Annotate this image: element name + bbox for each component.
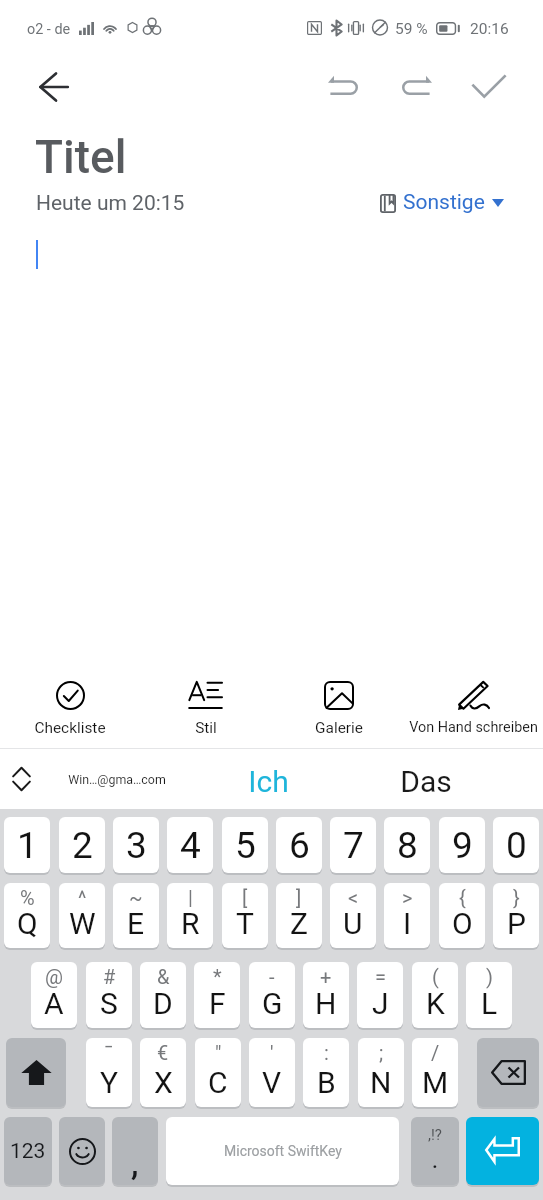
staticText: ; <box>379 1041 384 1064</box>
staticText: 123 <box>10 1139 46 1164</box>
button[interactable]: Fertig <box>462 66 515 108</box>
button[interactable]: 9 <box>439 817 485 873</box>
staticText: 7 <box>343 824 364 867</box>
button[interactable]: Zurück <box>24 72 69 102</box>
staticText: Stil <box>195 719 217 737</box>
staticText: @ <box>45 965 63 988</box>
staticText: L <box>481 986 498 1021</box>
staticText: 5 <box>235 824 256 867</box>
staticText: H <box>315 986 337 1021</box>
staticText: K <box>426 986 445 1021</box>
button[interactable]: ( <box>412 962 458 1028</box>
button[interactable]: ,!? <box>411 1117 459 1185</box>
staticText: J <box>372 986 389 1021</box>
button[interactable]: Vorschläge erweitern <box>2 749 40 809</box>
staticText: € <box>157 1041 169 1064</box>
button[interactable]: ¯ <box>86 1038 132 1107</box>
button[interactable]: : <box>303 1038 349 1107</box>
staticText: 20:16 <box>470 20 509 38</box>
staticText: A <box>44 986 64 1021</box>
button[interactable]: 3 <box>113 817 159 873</box>
button[interactable]: Löschen <box>477 1038 539 1107</box>
staticText: D <box>153 986 173 1021</box>
button[interactable]: ) <box>466 962 512 1028</box>
button[interactable]: Win…@gma…com <box>41 749 193 809</box>
button[interactable]: Sonstige <box>380 190 504 215</box>
button[interactable]: / <box>412 1038 458 1107</box>
button[interactable]: ] <box>276 883 322 948</box>
button[interactable]: Stil <box>138 664 272 748</box>
staticText: 8 <box>397 824 418 867</box>
button[interactable]: ' <box>249 1038 295 1107</box>
staticText: 0 <box>506 824 527 867</box>
button[interactable]: Checkliste <box>3 664 137 748</box>
button[interactable]: 123 <box>4 1117 52 1185</box>
staticText: T <box>236 906 254 941</box>
button[interactable]: 7 <box>330 817 376 873</box>
button[interactable]: = <box>357 962 403 1028</box>
button[interactable]: Ich <box>192 751 344 811</box>
button[interactable]: } <box>493 883 539 948</box>
button[interactable]: Rückgängig <box>318 66 368 106</box>
button[interactable]: Galerie <box>272 664 406 748</box>
button[interactable]: 8 <box>384 817 430 873</box>
button[interactable]: # <box>86 962 132 1028</box>
staticText: > <box>402 886 413 909</box>
staticText: ~ <box>129 886 143 909</box>
staticText: | <box>188 886 193 909</box>
button[interactable]: Eingabe <box>466 1117 539 1185</box>
staticText: S <box>100 986 118 1021</box>
button[interactable]: - <box>249 962 295 1028</box>
staticText: 3 <box>126 824 147 867</box>
staticText: + <box>320 965 332 988</box>
button[interactable]: + <box>303 962 349 1028</box>
staticText: ' <box>270 1041 274 1064</box>
staticText: Microsoft SwiftKey <box>224 1143 342 1159</box>
staticText: 59 % <box>395 20 428 38</box>
button[interactable]: @ <box>31 962 77 1028</box>
button[interactable]: ~ <box>113 883 159 948</box>
button[interactable]: Das <box>350 751 502 811</box>
staticText: Z <box>290 906 308 941</box>
button[interactable]: , <box>112 1117 158 1185</box>
button[interactable]: 0 <box>493 817 539 873</box>
staticText: E <box>127 906 145 941</box>
button[interactable]: 5 <box>222 817 268 873</box>
staticText: B <box>317 1065 336 1100</box>
button[interactable]: " <box>195 1038 241 1107</box>
button[interactable]: ^ <box>59 883 105 948</box>
staticText: Sonstige <box>403 190 485 215</box>
staticText: 1 <box>17 824 38 867</box>
button[interactable]: ; <box>358 1038 404 1107</box>
staticText: [ <box>242 886 248 909</box>
button[interactable]: 2 <box>59 817 105 873</box>
staticText: ] <box>296 886 302 909</box>
staticText: * <box>213 965 222 988</box>
button[interactable]: 6 <box>276 817 322 873</box>
staticText: G <box>262 986 283 1021</box>
staticText: I <box>403 906 412 941</box>
button[interactable]: < <box>330 883 376 948</box>
staticText: F <box>209 986 226 1021</box>
button[interactable]: Wiederholen <box>392 66 442 106</box>
staticText: ^ <box>78 886 87 909</box>
button[interactable]: 4 <box>167 817 213 873</box>
staticText: & <box>157 965 170 988</box>
button[interactable]: > <box>384 883 430 948</box>
button[interactable]: € <box>140 1038 186 1107</box>
button[interactable]: { <box>439 883 485 948</box>
button[interactable]: * <box>194 962 240 1028</box>
staticText: Galerie <box>315 719 363 737</box>
button[interactable]: Leertaste <box>166 1117 399 1185</box>
button[interactable]: Von Hand schreiben <box>406 664 540 748</box>
staticText: Von Hand schreiben <box>409 719 538 736</box>
button[interactable]: & <box>140 962 186 1028</box>
button[interactable]: Emoji <box>59 1117 105 1185</box>
staticText: Checkliste <box>34 719 106 737</box>
button[interactable]: Umschalttaste <box>6 1038 66 1107</box>
staticText: 9 <box>452 824 473 867</box>
button[interactable]: 1 <box>4 817 50 873</box>
button[interactable]: | <box>167 883 213 948</box>
button[interactable]: % <box>4 883 50 948</box>
button[interactable]: [ <box>222 883 268 948</box>
